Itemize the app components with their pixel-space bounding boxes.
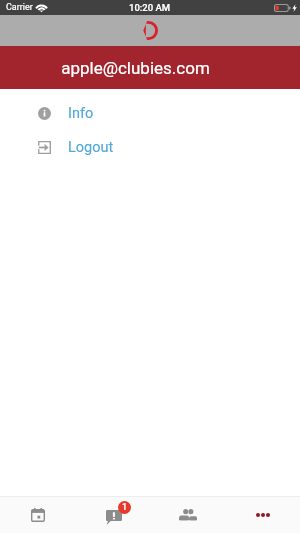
button[interactable]: apple@clubies.com (0, 46, 300, 89)
staticText: Info (68, 105, 94, 122)
button[interactable]: Calendar (0, 497, 75, 533)
staticText: 1 (122, 502, 128, 513)
staticText: 10:20 AM (129, 2, 171, 13)
button[interactable]: More (225, 497, 300, 533)
button[interactable]: Info (0, 96, 300, 130)
button[interactable]: Announcements (75, 497, 150, 533)
button[interactable]: Logout (0, 130, 300, 164)
staticText: Logout (68, 139, 114, 156)
button[interactable]: People (150, 497, 225, 533)
staticText: Carrier (6, 2, 33, 13)
staticText: apple@clubies.com (61, 58, 210, 78)
